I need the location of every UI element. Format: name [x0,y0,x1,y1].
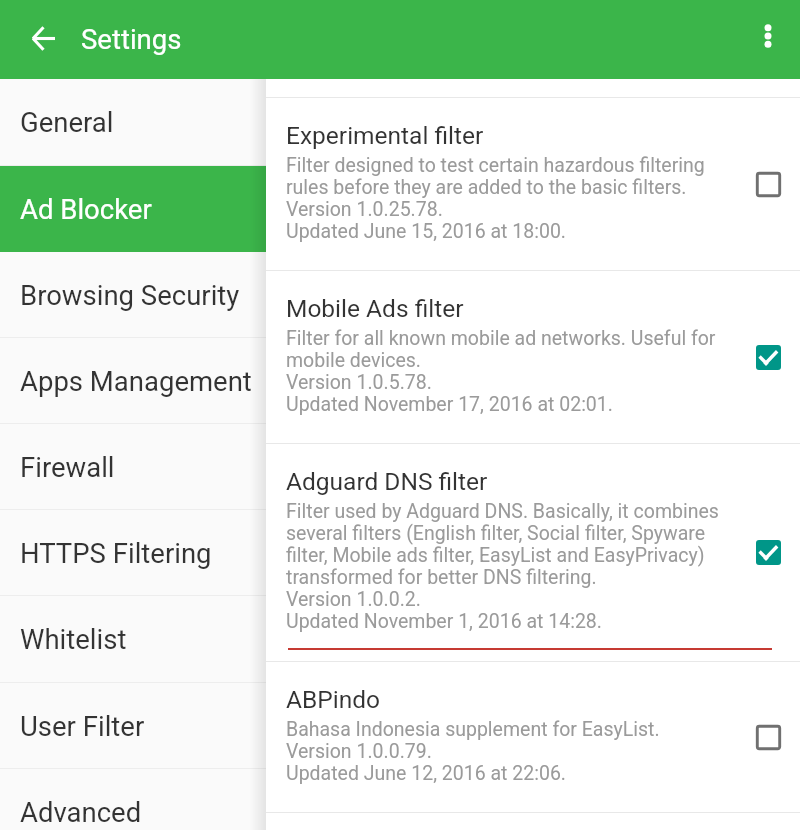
button[interactable]: Whitelist [0,596,266,682]
staticText: Advanced [20,796,142,828]
button[interactable]: Browsing Security [0,252,266,337]
button[interactable]: Experimental filter [266,98,800,271]
staticText: ABPindo [286,685,380,714]
button[interactable]: HTTPS Filtering [0,510,266,595]
button[interactable]: ABPindo [266,662,800,813]
button[interactable]: Advanced [0,769,266,830]
staticText: General [20,106,114,138]
staticText: Ad Blocker [20,193,152,225]
staticText: User Filter [20,710,145,742]
staticText: Whitelist [20,623,127,655]
staticText: Settings [81,23,182,55]
staticText: Apps Management [20,365,252,397]
staticText: Browsing Security [20,279,240,311]
staticText: HTTPS Filtering [20,537,212,569]
button[interactable]: Disable Mobile Ads filter [744,333,792,381]
button[interactable]: Back [11,6,75,70]
staticText: Filter used by Adguard DNS. Basically, i… [286,500,719,633]
button[interactable]: Firewall [0,424,266,509]
staticText: Experimental filter [286,121,484,150]
button[interactable]: Enable Experimental filter [744,160,792,208]
staticText: Filter for all known mobile ad networks.… [286,327,716,416]
button[interactable]: Disable Adguard DNS filter [744,528,792,576]
button[interactable]: More options [736,4,799,67]
staticText: Firewall [20,451,115,483]
button[interactable]: Adguard DNS filter [266,444,800,662]
staticText: Mobile Ads filter [286,294,464,323]
button[interactable]: Ad Blocker [0,166,266,252]
staticText: Bahasa Indonesia supplement for EasyList… [286,718,660,785]
staticText: Adguard DNS filter [286,467,488,496]
button[interactable]: User Filter [0,683,266,768]
staticText: Filter designed to test certain hazardou… [286,154,705,243]
button[interactable]: Mobile Ads filter [266,271,800,444]
button[interactable]: General [0,79,266,165]
button[interactable]: Enable ABPindo [744,713,792,761]
button[interactable]: Apps Management [0,338,266,423]
